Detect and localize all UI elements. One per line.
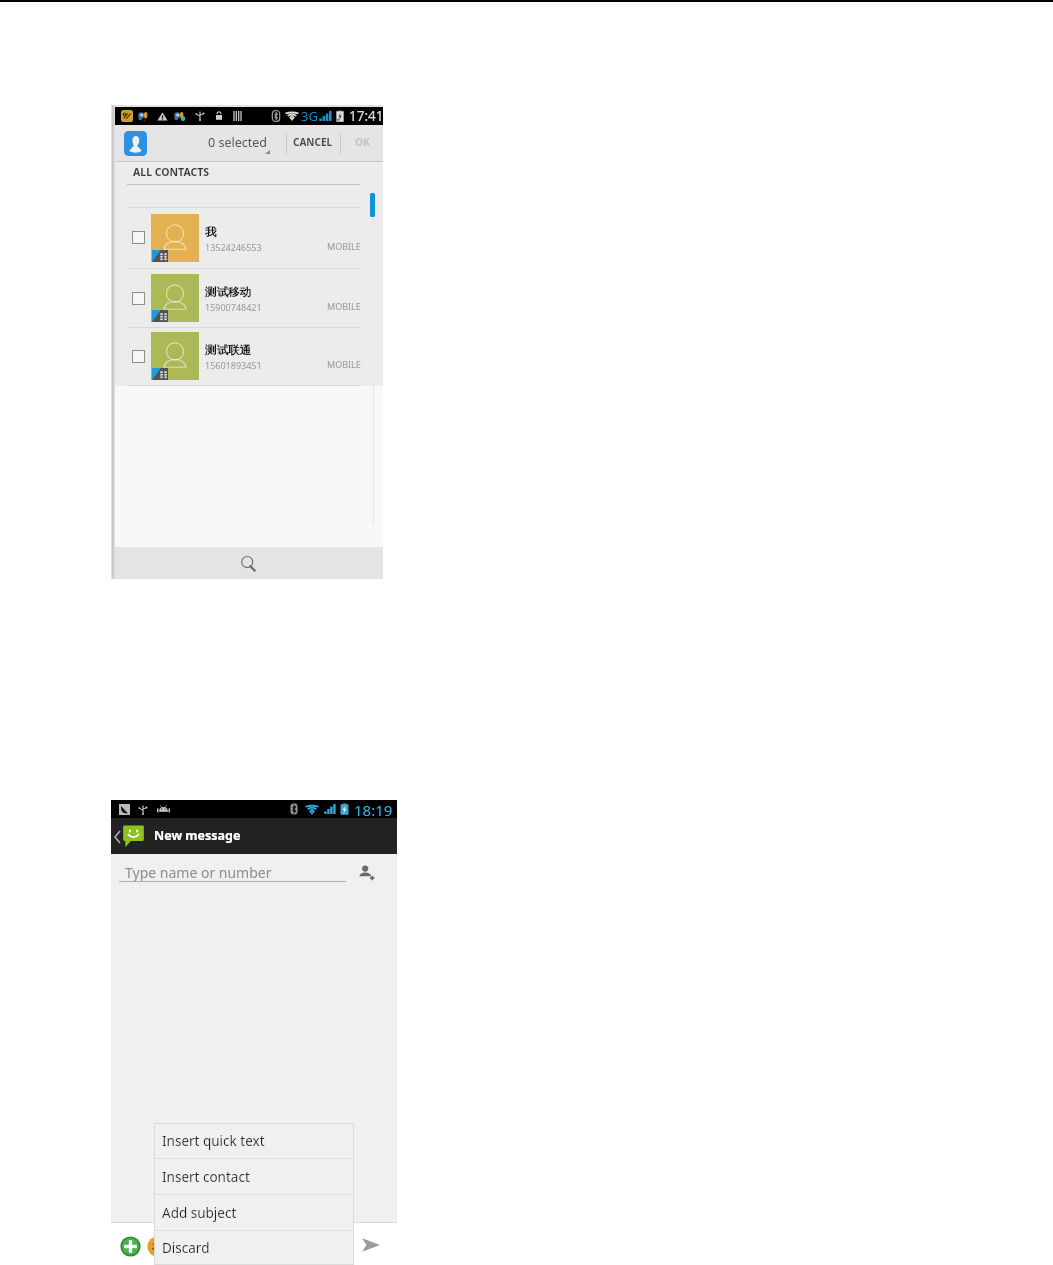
staticText: Discard (162, 1239, 210, 1257)
staticText: New message (154, 827, 241, 844)
staticText: 测试联通 (205, 343, 251, 357)
staticText: Insert contact (162, 1168, 250, 1186)
staticText: 15601893451 (205, 359, 262, 371)
button[interactable]: Contacts (124, 131, 147, 156)
staticText: MOBILE (327, 358, 361, 370)
staticText: 13524246553 (205, 241, 262, 253)
staticText: 测试移动 (205, 285, 251, 299)
button[interactable]: Select contact (115, 327, 383, 385)
button[interactable]: Insert contact (154, 1159, 354, 1194)
button[interactable]: Add subject (154, 1195, 354, 1230)
staticText: 17:41 (349, 107, 384, 125)
button[interactable]: Back (111, 830, 124, 843)
staticText: MOBILE (327, 240, 361, 252)
staticText: CANCEL (293, 135, 333, 149)
button[interactable]: Send (358, 1232, 384, 1258)
button[interactable]: Attach (120, 1236, 141, 1257)
staticText: 18:19 (354, 800, 393, 818)
button[interactable]: Add recipient (356, 863, 376, 883)
staticText: 3G (301, 107, 318, 125)
staticText: 我 (205, 225, 217, 239)
staticText: 15900748421 (205, 301, 262, 313)
staticText: Insert quick text (162, 1132, 265, 1150)
button[interactable]: Select contact (132, 292, 145, 305)
button[interactable]: OK (341, 125, 383, 161)
button[interactable]: CANCEL (291, 125, 335, 161)
button[interactable]: Messaging (122, 824, 145, 847)
button[interactable]: Insert quick text (154, 1123, 354, 1158)
button[interactable]: Select contact (115, 268, 383, 328)
button[interactable]: Select contact (115, 207, 383, 268)
button[interactable]: Discard (154, 1231, 354, 1265)
button[interactable]: Select contact (132, 350, 145, 363)
staticText: ALL CONTACTS (133, 165, 210, 179)
staticText: Add subject (162, 1204, 237, 1222)
button[interactable]: Search (235, 549, 263, 577)
staticText: 0 selected (208, 134, 267, 151)
button[interactable]: Emoji (147, 1236, 168, 1257)
staticText: OK (355, 135, 370, 149)
staticText: MOBILE (327, 300, 361, 312)
button[interactable]: Select contact (132, 231, 145, 244)
staticText: Type name or number (125, 863, 272, 882)
